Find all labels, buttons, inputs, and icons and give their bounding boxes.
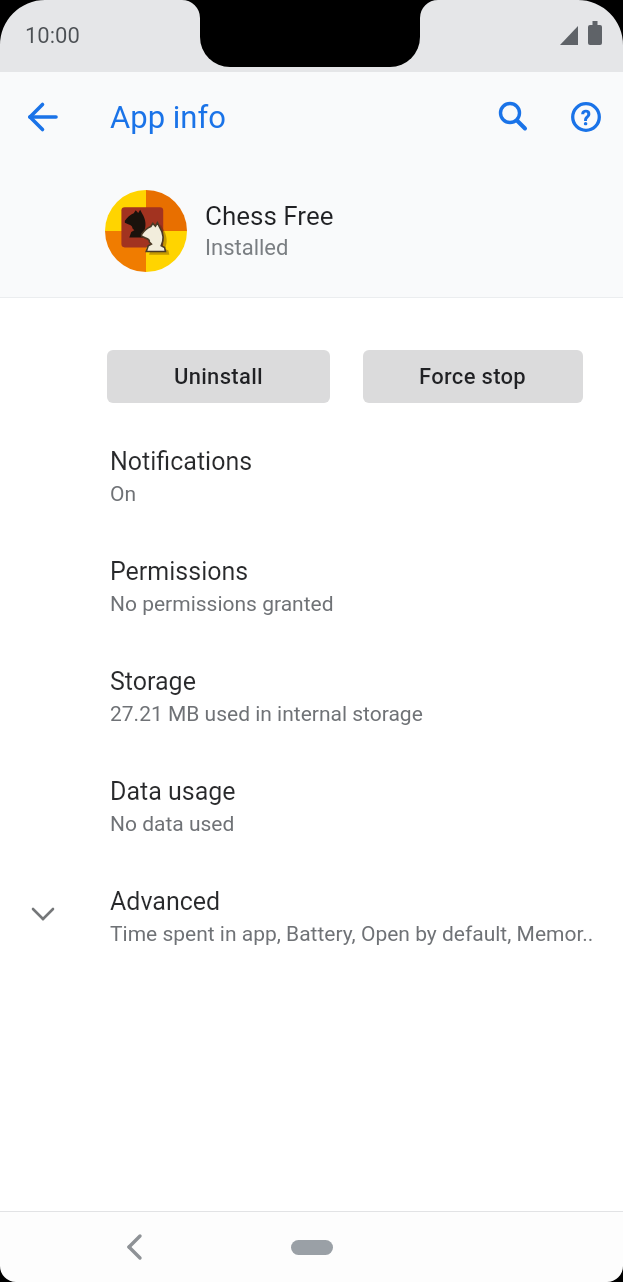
staticText: Permissions (110, 557, 249, 586)
staticText: 27.21 MB used in internal storage (110, 702, 423, 727)
button[interactable]: Storage (0, 667, 623, 777)
button[interactable] (111, 1223, 159, 1271)
button[interactable]: Advanced (0, 887, 623, 997)
staticText: Uninstall (174, 364, 264, 390)
staticText: Installed (205, 235, 289, 261)
button[interactable]: Notifications (0, 447, 623, 557)
staticText: App info (110, 99, 226, 135)
staticText: Advanced (110, 887, 221, 916)
staticText: Data usage (110, 777, 236, 806)
button[interactable] (489, 93, 537, 141)
button[interactable]: Uninstall (107, 350, 330, 403)
staticText: Notifications (110, 447, 253, 476)
button[interactable] (291, 1240, 333, 1255)
staticText: Chess Free (205, 201, 334, 231)
button[interactable]: Data usage (0, 777, 623, 887)
button[interactable]: Permissions (0, 557, 623, 667)
staticText: On (110, 482, 137, 507)
button[interactable]: ? (562, 93, 610, 141)
staticText: No data used (110, 812, 235, 837)
staticText: Storage (110, 667, 196, 696)
staticText: Force stop (419, 364, 527, 390)
staticText: No permissions granted (110, 592, 334, 617)
staticText: Time spent in app, Battery, Open by defa… (110, 922, 594, 947)
staticText: 10:00 (25, 23, 80, 49)
staticText: ? (581, 106, 591, 129)
button[interactable]: Force stop (363, 350, 583, 403)
button[interactable] (19, 93, 67, 141)
